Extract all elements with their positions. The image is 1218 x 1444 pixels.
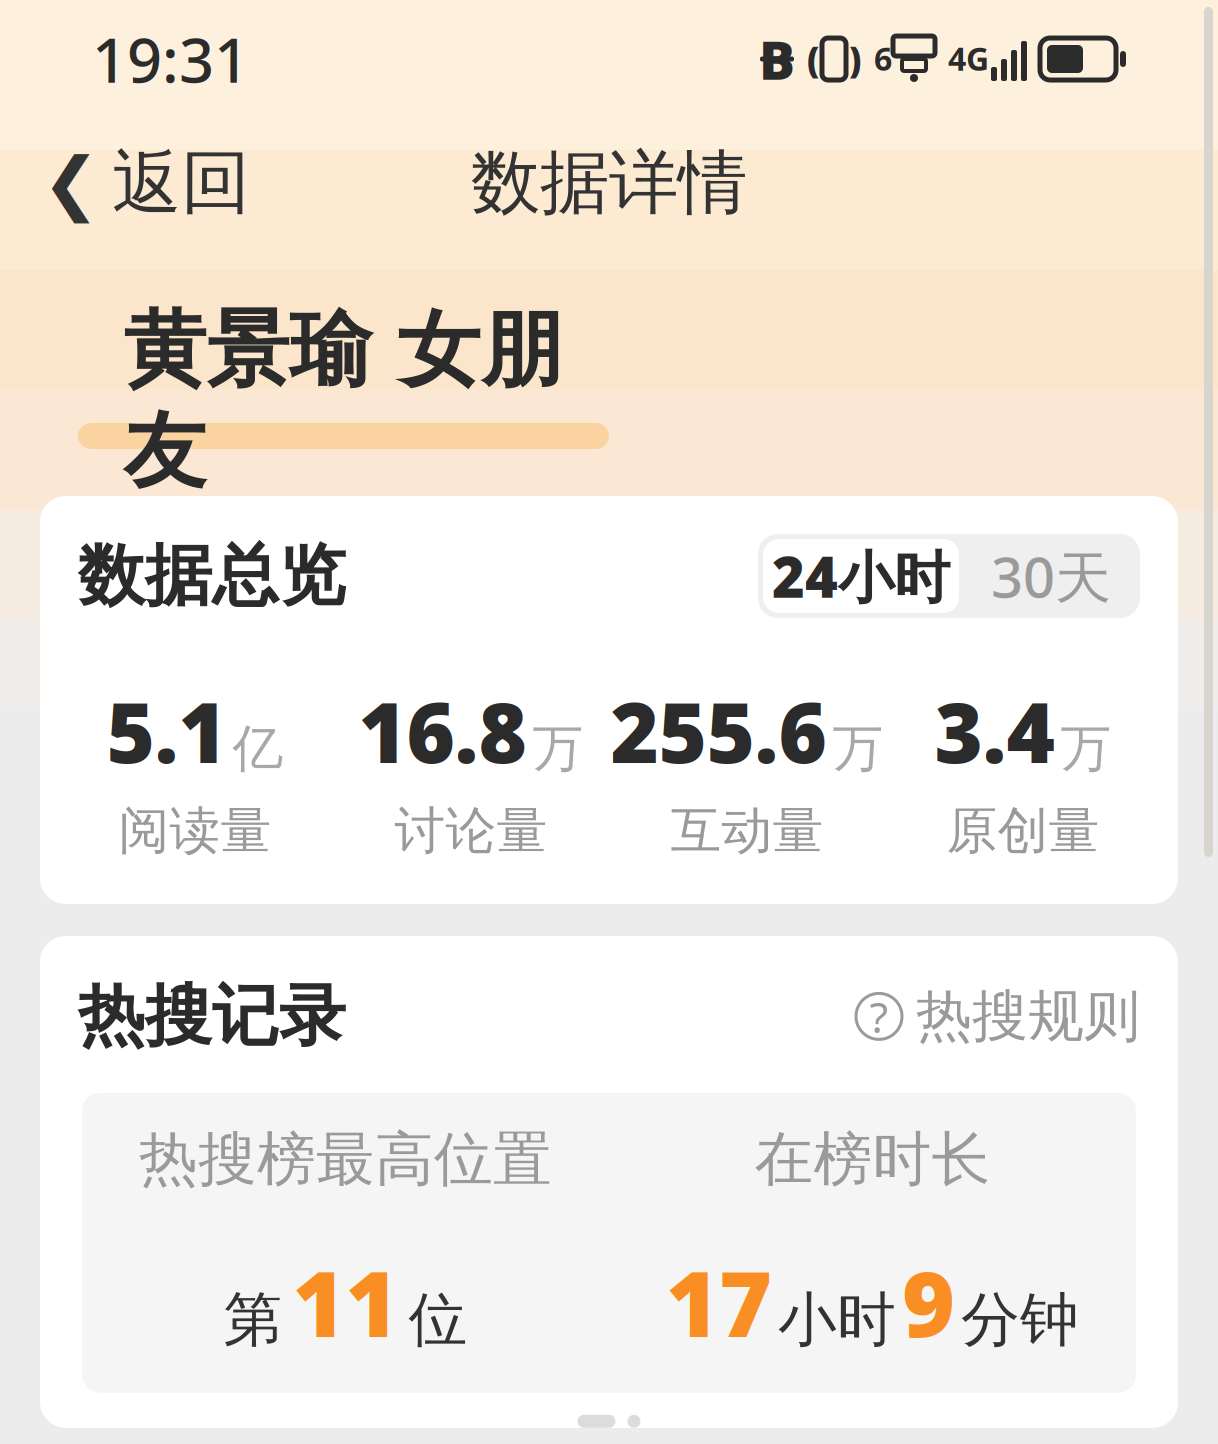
- staticText: (: [807, 36, 819, 82]
- staticText: 11: [292, 1242, 398, 1362]
- staticText: 万: [1060, 717, 1111, 780]
- staticText: 30天: [991, 539, 1111, 613]
- staticText: ): [849, 36, 861, 82]
- staticText: 返回: [112, 140, 250, 226]
- staticText: 万: [832, 717, 883, 780]
- staticText: 热搜记录: [78, 975, 346, 1057]
- staticText: 在榜时长: [754, 1124, 990, 1196]
- staticText: 6: [874, 37, 892, 79]
- button[interactable]: ?: [856, 974, 1140, 1059]
- staticText: 万: [532, 717, 583, 780]
- staticText: 小时: [778, 1284, 896, 1356]
- staticText: 255.6: [610, 676, 826, 786]
- staticText: 热搜榜最高位置: [139, 1124, 552, 1196]
- staticText: 第: [223, 1284, 282, 1356]
- staticText: 热搜规则: [916, 982, 1140, 1051]
- staticText: 24小时: [772, 539, 950, 613]
- staticText: 16.8: [358, 676, 526, 786]
- staticText: 位: [408, 1284, 467, 1356]
- button[interactable]: 30天: [963, 539, 1139, 613]
- staticText: 黄景瑜 女朋友: [123, 299, 563, 503]
- button[interactable]: ❮: [24, 126, 268, 240]
- staticText: ?: [869, 988, 888, 1045]
- staticText: 9: [902, 1242, 955, 1362]
- staticText: ❮: [42, 144, 100, 222]
- staticText: 讨论量: [394, 800, 547, 862]
- staticText: 互动量: [670, 800, 823, 862]
- button[interactable]: 24小时: [759, 535, 963, 617]
- staticText: 3.4: [934, 676, 1054, 786]
- staticText: 分钟: [961, 1284, 1079, 1356]
- staticText: 阅读量: [118, 800, 271, 862]
- staticText: 4G: [948, 37, 989, 79]
- staticText: 19:31: [92, 18, 249, 100]
- staticText: 数据总览: [78, 535, 346, 617]
- staticText: 5.1: [106, 676, 226, 786]
- staticText: B: [759, 24, 795, 94]
- staticText: 原创量: [946, 800, 1099, 862]
- staticText: 亿: [232, 717, 283, 780]
- staticText: 数据详情: [471, 140, 747, 226]
- staticText: 17: [666, 1242, 772, 1362]
